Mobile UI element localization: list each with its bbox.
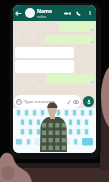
button[interactable] [40,120,48,131]
button[interactable] [64,108,72,120]
button[interactable] [31,120,40,131]
button[interactable] [88,108,96,120]
button[interactable] [46,74,94,84]
button[interactable] [48,108,56,120]
button[interactable] [40,131,48,142]
button[interactable] [80,131,88,142]
button[interactable] [88,142,96,153]
button[interactable]: Type a message [14,95,81,108]
button[interactable] [22,120,31,131]
button[interactable] [80,120,88,131]
button[interactable] [13,120,22,131]
button[interactable] [56,120,64,131]
button[interactable] [56,142,64,153]
button[interactable] [48,131,56,142]
button[interactable] [48,120,56,131]
button[interactable] [88,131,96,142]
button[interactable] [72,120,80,131]
staticText: Type a message [24,99,56,105]
button[interactable] [13,131,22,142]
button[interactable] [22,108,31,120]
button[interactable]: Camera [73,99,79,105]
button[interactable] [64,131,72,142]
button[interactable] [59,22,94,32]
button[interactable] [72,142,80,153]
button[interactable] [13,108,22,120]
button[interactable] [72,131,80,142]
button[interactable] [31,108,40,120]
button[interactable]: Attach [66,99,72,105]
button[interactable]: Voice call [75,10,82,17]
button[interactable]: Name [37,8,64,19]
button[interactable] [64,142,72,153]
staticText: Name [37,8,52,15]
button[interactable] [56,108,64,120]
button[interactable] [64,120,72,131]
button[interactable]: Back [14,9,23,18]
staticText: online [37,15,47,19]
button[interactable] [48,142,56,153]
button[interactable] [80,108,88,120]
button[interactable] [56,131,64,142]
button[interactable] [45,35,94,44]
button[interactable]: Video call [64,10,71,17]
button[interactable] [31,131,40,142]
button[interactable]: More options [88,11,92,15]
button[interactable] [80,142,88,153]
button[interactable]: Profile photo [25,8,35,18]
button[interactable] [40,142,48,153]
button[interactable] [88,120,96,131]
button[interactable] [40,108,48,120]
button[interactable] [22,131,31,142]
button[interactable]: Voice message [83,96,94,107]
button[interactable] [13,142,22,153]
button[interactable] [22,142,31,153]
button[interactable] [31,142,40,153]
button[interactable] [72,108,80,120]
